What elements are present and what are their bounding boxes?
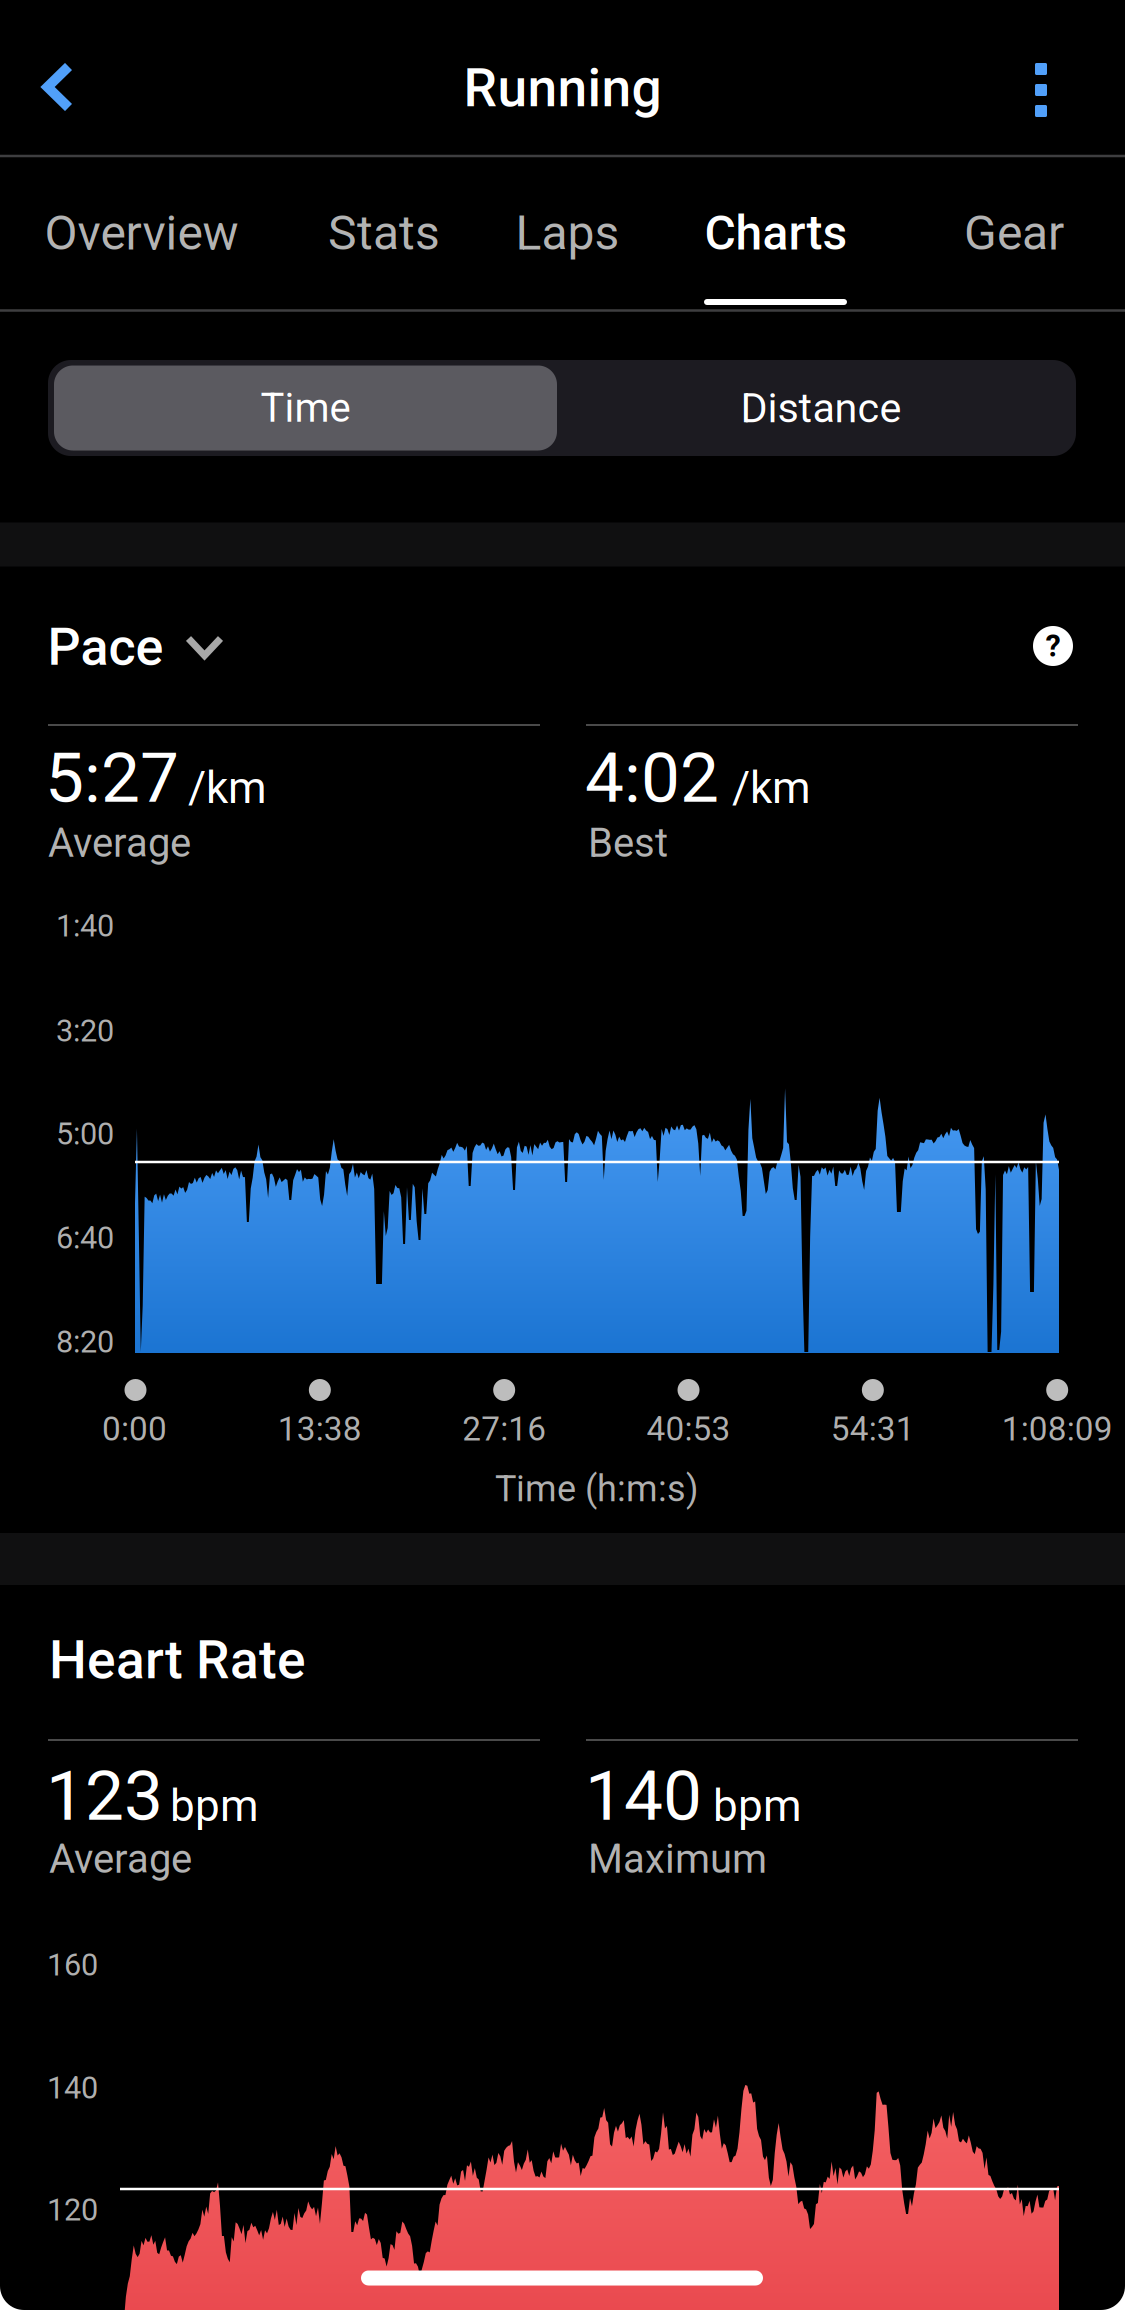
staticText: 0:00 xyxy=(102,1409,167,1449)
staticText: /km xyxy=(188,762,267,814)
button[interactable]: Back xyxy=(2,31,114,143)
staticText: Maximum xyxy=(588,1836,767,1882)
button[interactable]: Time xyxy=(54,360,557,456)
staticText: Time xyxy=(260,385,350,431)
staticText: Heart Rate xyxy=(49,1629,306,1691)
staticText: Stats xyxy=(328,205,440,261)
button[interactable]: Distance xyxy=(569,360,1072,456)
staticText: /km xyxy=(732,762,811,814)
staticText: Average xyxy=(48,820,191,866)
button[interactable]: Pace xyxy=(47,605,220,689)
button[interactable]: Laps xyxy=(485,157,650,309)
button[interactable]: Stats xyxy=(283,157,485,309)
staticText: Overview xyxy=(44,205,238,261)
staticText: 6:40 xyxy=(56,1220,114,1256)
staticText: Time (h:m:s) xyxy=(495,1468,699,1510)
staticText: ? xyxy=(1045,628,1060,664)
staticText: Running xyxy=(463,57,661,119)
staticText: 120 xyxy=(47,2192,98,2228)
staticText: 4:02 xyxy=(585,737,719,819)
button[interactable]: Overview xyxy=(0,157,283,309)
staticText: bpm xyxy=(713,1780,802,1832)
staticText: 140 xyxy=(585,1755,702,1837)
staticText: 27:16 xyxy=(462,1409,546,1449)
staticText: 3:20 xyxy=(56,1013,114,1049)
button[interactable]: More options xyxy=(985,34,1097,146)
staticText: 13:38 xyxy=(278,1409,362,1449)
staticText: 140 xyxy=(47,2070,98,2106)
staticText: 160 xyxy=(47,1947,98,1983)
staticText: 5:27 xyxy=(45,737,179,819)
staticText: 54:31 xyxy=(831,1409,915,1449)
button[interactable]: Gear xyxy=(902,157,1125,309)
button[interactable]: Charts xyxy=(650,157,902,309)
staticText: Pace xyxy=(47,616,163,677)
staticText: Gear xyxy=(964,205,1064,261)
staticText: 123 xyxy=(46,1755,163,1837)
staticText: 1:08:09 xyxy=(1002,1409,1113,1449)
staticText: 1:40 xyxy=(56,908,114,944)
staticText: Distance xyxy=(740,384,901,432)
staticText: 5:00 xyxy=(56,1116,114,1152)
staticText: Laps xyxy=(515,205,619,261)
staticText: Average xyxy=(49,1836,192,1882)
staticText: Best xyxy=(588,820,668,866)
staticText: bpm xyxy=(170,1780,259,1832)
staticText: 8:20 xyxy=(56,1324,114,1360)
button[interactable]: About pace xyxy=(1005,598,1101,694)
staticText: 40:53 xyxy=(646,1409,730,1449)
staticText: Charts xyxy=(704,205,847,261)
